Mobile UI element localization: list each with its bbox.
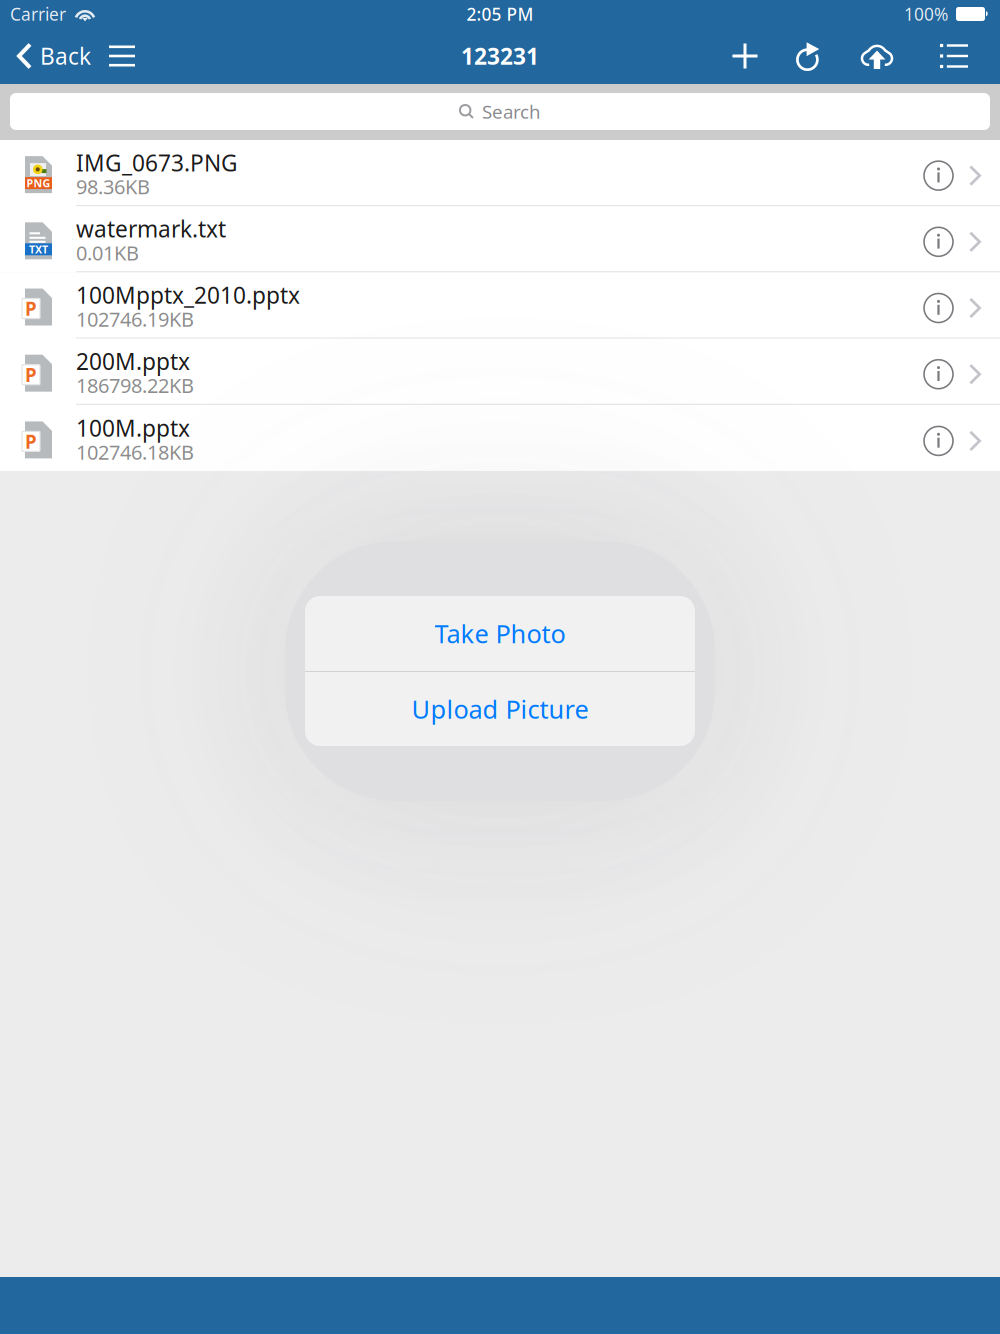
button[interactable]: Search (0, 84, 1000, 140)
button[interactable]: P (0, 405, 1000, 471)
staticText: 100% (904, 2, 948, 25)
staticText: watermark.txt (76, 214, 226, 244)
button[interactable]: Add (711, 28, 779, 84)
button[interactable]: Refresh (779, 28, 837, 84)
button[interactable]: Upload Picture (305, 672, 695, 746)
staticText: Search (482, 99, 541, 124)
staticText: P (25, 429, 37, 454)
staticText: PNG (26, 176, 50, 190)
staticText: TXT (29, 242, 48, 256)
staticText: Upload Picture (411, 692, 588, 726)
button[interactable]: Back (0, 28, 97, 84)
staticText: 200M.pptx (76, 346, 190, 376)
staticText: 0.01KB (76, 239, 139, 266)
staticText: IMG_0673.PNG (76, 147, 238, 178)
button[interactable]: Take Photo (305, 596, 695, 671)
button[interactable]: Menu (97, 28, 147, 84)
staticText: 100M.pptx (76, 413, 190, 443)
button[interactable]: P (0, 272, 1000, 339)
button[interactable]: P (0, 339, 1000, 405)
button[interactable]: PNG (0, 140, 1000, 206)
button[interactable]: TXT (0, 206, 1000, 272)
staticText: 100Mpptx_2010.pptx (76, 280, 300, 310)
staticText: P (25, 362, 37, 387)
staticText: Take Photo (434, 617, 565, 650)
button[interactable]: Upload (837, 28, 917, 84)
staticText: Back (40, 41, 91, 71)
staticText: 123231 (461, 41, 539, 71)
staticText: 98.36KB (76, 173, 150, 200)
staticText: P (25, 296, 37, 321)
staticText: 2:05 PM (466, 2, 533, 25)
staticText: 102746.18KB (76, 439, 194, 465)
staticText: 186798.22KB (76, 372, 194, 398)
staticText: 102746.19KB (76, 306, 194, 332)
button[interactable]: View options (917, 28, 1000, 84)
staticText: Carrier (10, 2, 66, 25)
